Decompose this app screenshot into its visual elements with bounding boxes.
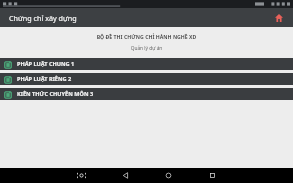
staticText: Quản lý dự án bbox=[0, 45, 293, 52]
button[interactable]: Back bbox=[114, 168, 136, 183]
button[interactable]: Recents bbox=[201, 168, 223, 183]
button[interactable]: PHÁP LUẬT RIÊNG 2 bbox=[0, 73, 293, 85]
staticText: Chứng chỉ xây dựng bbox=[9, 13, 77, 23]
staticText: PHÁP LUẬT CHUNG 1 bbox=[17, 60, 293, 68]
button[interactable]: KIẾN THỨC CHUYÊN MÔN 3 bbox=[0, 88, 293, 100]
staticText: PHÁP LUẬT RIÊNG 2 bbox=[17, 75, 293, 83]
button[interactable]: Home bbox=[157, 168, 179, 183]
button[interactable]: Screenshot bbox=[70, 168, 92, 183]
button[interactable]: PHÁP LUẬT CHUNG 1 bbox=[0, 58, 293, 70]
staticText: KIẾN THỨC CHUYÊN MÔN 3 bbox=[17, 90, 293, 98]
staticText: BỘ ĐỀ THI CHỨNG CHỈ HÀNH NGHỀ XD bbox=[0, 33, 293, 40]
button[interactable]: Home bbox=[272, 11, 286, 25]
